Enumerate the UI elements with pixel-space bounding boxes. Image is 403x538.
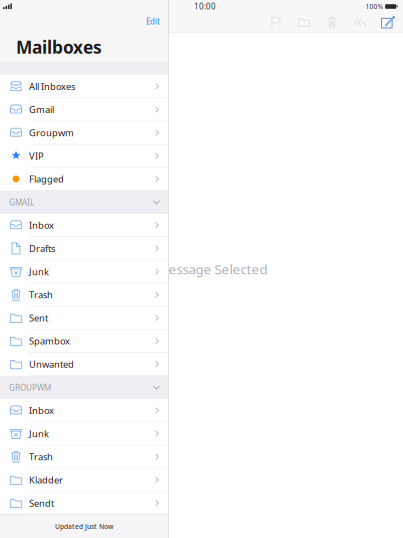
staticText: 100% — [365, 2, 383, 11]
staticText: Inbox — [29, 404, 54, 417]
button[interactable]: Junk — [0, 422, 168, 445]
button[interactable]: Reply — [346, 13, 374, 32]
button[interactable]: VIP — [0, 144, 168, 167]
staticText: Trash — [29, 450, 53, 463]
button[interactable]: Inbox — [0, 399, 168, 422]
button[interactable]: Flagged — [0, 168, 168, 191]
button[interactable]: Kladder — [0, 468, 168, 492]
staticText: GMAIL — [9, 197, 34, 208]
button[interactable]: Spambox — [0, 330, 168, 353]
staticText: Drafts — [29, 242, 55, 255]
button[interactable]: Delete — [318, 13, 346, 32]
staticText: Trash — [29, 288, 53, 301]
staticText: Flagged — [29, 173, 64, 185]
button[interactable]: Edit — [146, 13, 168, 27]
staticText: Unwanted — [29, 358, 74, 370]
staticText: Groupwm — [29, 126, 74, 139]
staticText: Gmail — [29, 103, 54, 116]
button[interactable]: Drafts — [0, 237, 168, 260]
button[interactable]: Trash — [0, 283, 168, 306]
button[interactable]: Junk — [0, 260, 168, 283]
staticText: Kladder — [29, 474, 63, 486]
button[interactable]: Move to folder — [290, 13, 318, 32]
staticText: Spambox — [29, 335, 70, 347]
staticText: GROUPWM — [9, 382, 51, 393]
staticText: Inbox — [29, 219, 54, 231]
button[interactable]: Groupwm — [0, 121, 168, 144]
button[interactable]: Unwanted — [0, 353, 168, 376]
button[interactable]: Sendt — [0, 492, 168, 515]
button[interactable]: All Inboxes — [0, 75, 168, 98]
button[interactable]: Gmail — [0, 98, 168, 121]
staticText: Updated Just Now — [55, 522, 113, 531]
staticText: Sendt — [29, 497, 54, 509]
button[interactable]: Sent — [0, 306, 168, 330]
staticText: All Inboxes — [29, 80, 75, 92]
staticText: Junk — [29, 427, 49, 440]
button[interactable]: Inbox — [0, 214, 168, 237]
staticText: No Message Selected — [135, 260, 267, 278]
staticText: Mailboxes — [16, 35, 102, 58]
button[interactable]: Flag — [262, 13, 290, 32]
staticText: VIP — [29, 150, 44, 162]
staticText: 10:00 — [194, 1, 216, 12]
staticText: Junk — [29, 265, 49, 278]
staticText: Edit — [146, 16, 160, 27]
button[interactable]: Trash — [0, 445, 168, 468]
button[interactable]: Compose — [374, 13, 403, 32]
staticText: Sent — [29, 312, 48, 324]
